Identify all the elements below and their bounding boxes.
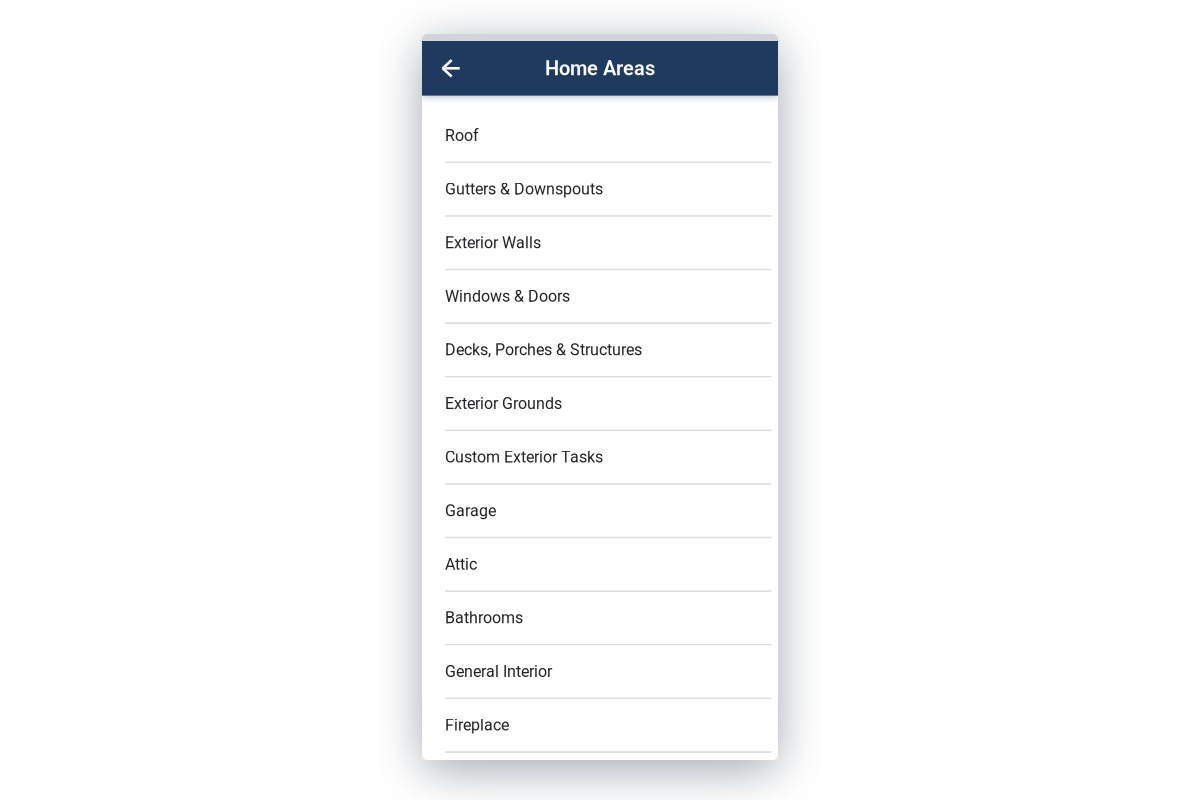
button[interactable]: Roof <box>422 110 778 163</box>
staticText: Exterior Grounds <box>445 394 562 413</box>
button[interactable]: Attic <box>422 538 778 592</box>
staticText: Roof <box>445 126 479 145</box>
staticText: General Interior <box>445 662 552 681</box>
staticText: Fireplace <box>445 716 509 734</box>
button[interactable]: Exterior Grounds <box>422 378 778 431</box>
staticText: Gutters & Downspouts <box>445 180 603 198</box>
staticText: Garage <box>445 501 496 520</box>
staticText: Attic <box>445 555 477 574</box>
button[interactable]: Exterior Walls <box>422 217 778 270</box>
button[interactable]: Bathrooms <box>422 592 778 646</box>
staticText: Custom Exterior Tasks <box>445 448 603 466</box>
button[interactable]: Gutters & Downspouts <box>422 163 778 217</box>
staticText: Windows & Doors <box>445 287 570 306</box>
button[interactable]: Custom Exterior Tasks <box>422 431 778 485</box>
button[interactable]: Garage <box>422 485 778 538</box>
button[interactable]: Windows & Doors <box>422 270 778 324</box>
button[interactable]: General Interior <box>422 646 778 699</box>
staticText: Bathrooms <box>445 608 523 627</box>
staticText: Home Areas <box>545 57 655 80</box>
button[interactable]: Decks, Porches & Structures <box>422 324 778 378</box>
staticText: Decks, Porches & Structures <box>445 340 642 359</box>
staticText: Exterior Walls <box>445 233 541 252</box>
button[interactable]: Fireplace <box>422 699 778 753</box>
button[interactable]: Back <box>422 41 473 96</box>
